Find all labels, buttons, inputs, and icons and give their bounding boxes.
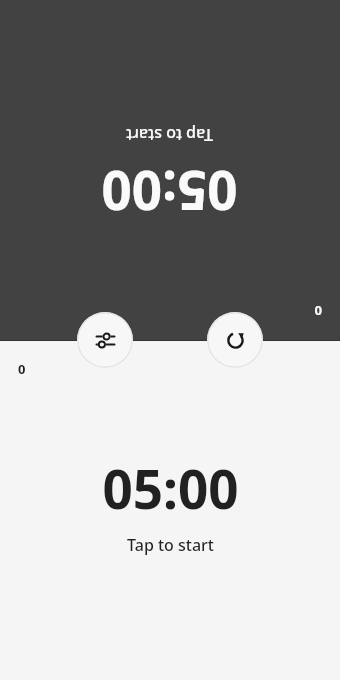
button[interactable]: 0 <box>0 340 340 680</box>
staticText: 0 <box>18 360 26 378</box>
staticText: 05:00 <box>101 156 238 228</box>
button[interactable]: Reset <box>207 312 263 368</box>
staticText: Tap to start <box>126 124 213 146</box>
staticText: Tap to start <box>127 534 214 556</box>
button[interactable]: 0 <box>0 0 340 340</box>
staticText: 05:00 <box>102 452 239 524</box>
button[interactable]: Settings <box>77 312 133 368</box>
staticText: 0 <box>314 302 322 320</box>
